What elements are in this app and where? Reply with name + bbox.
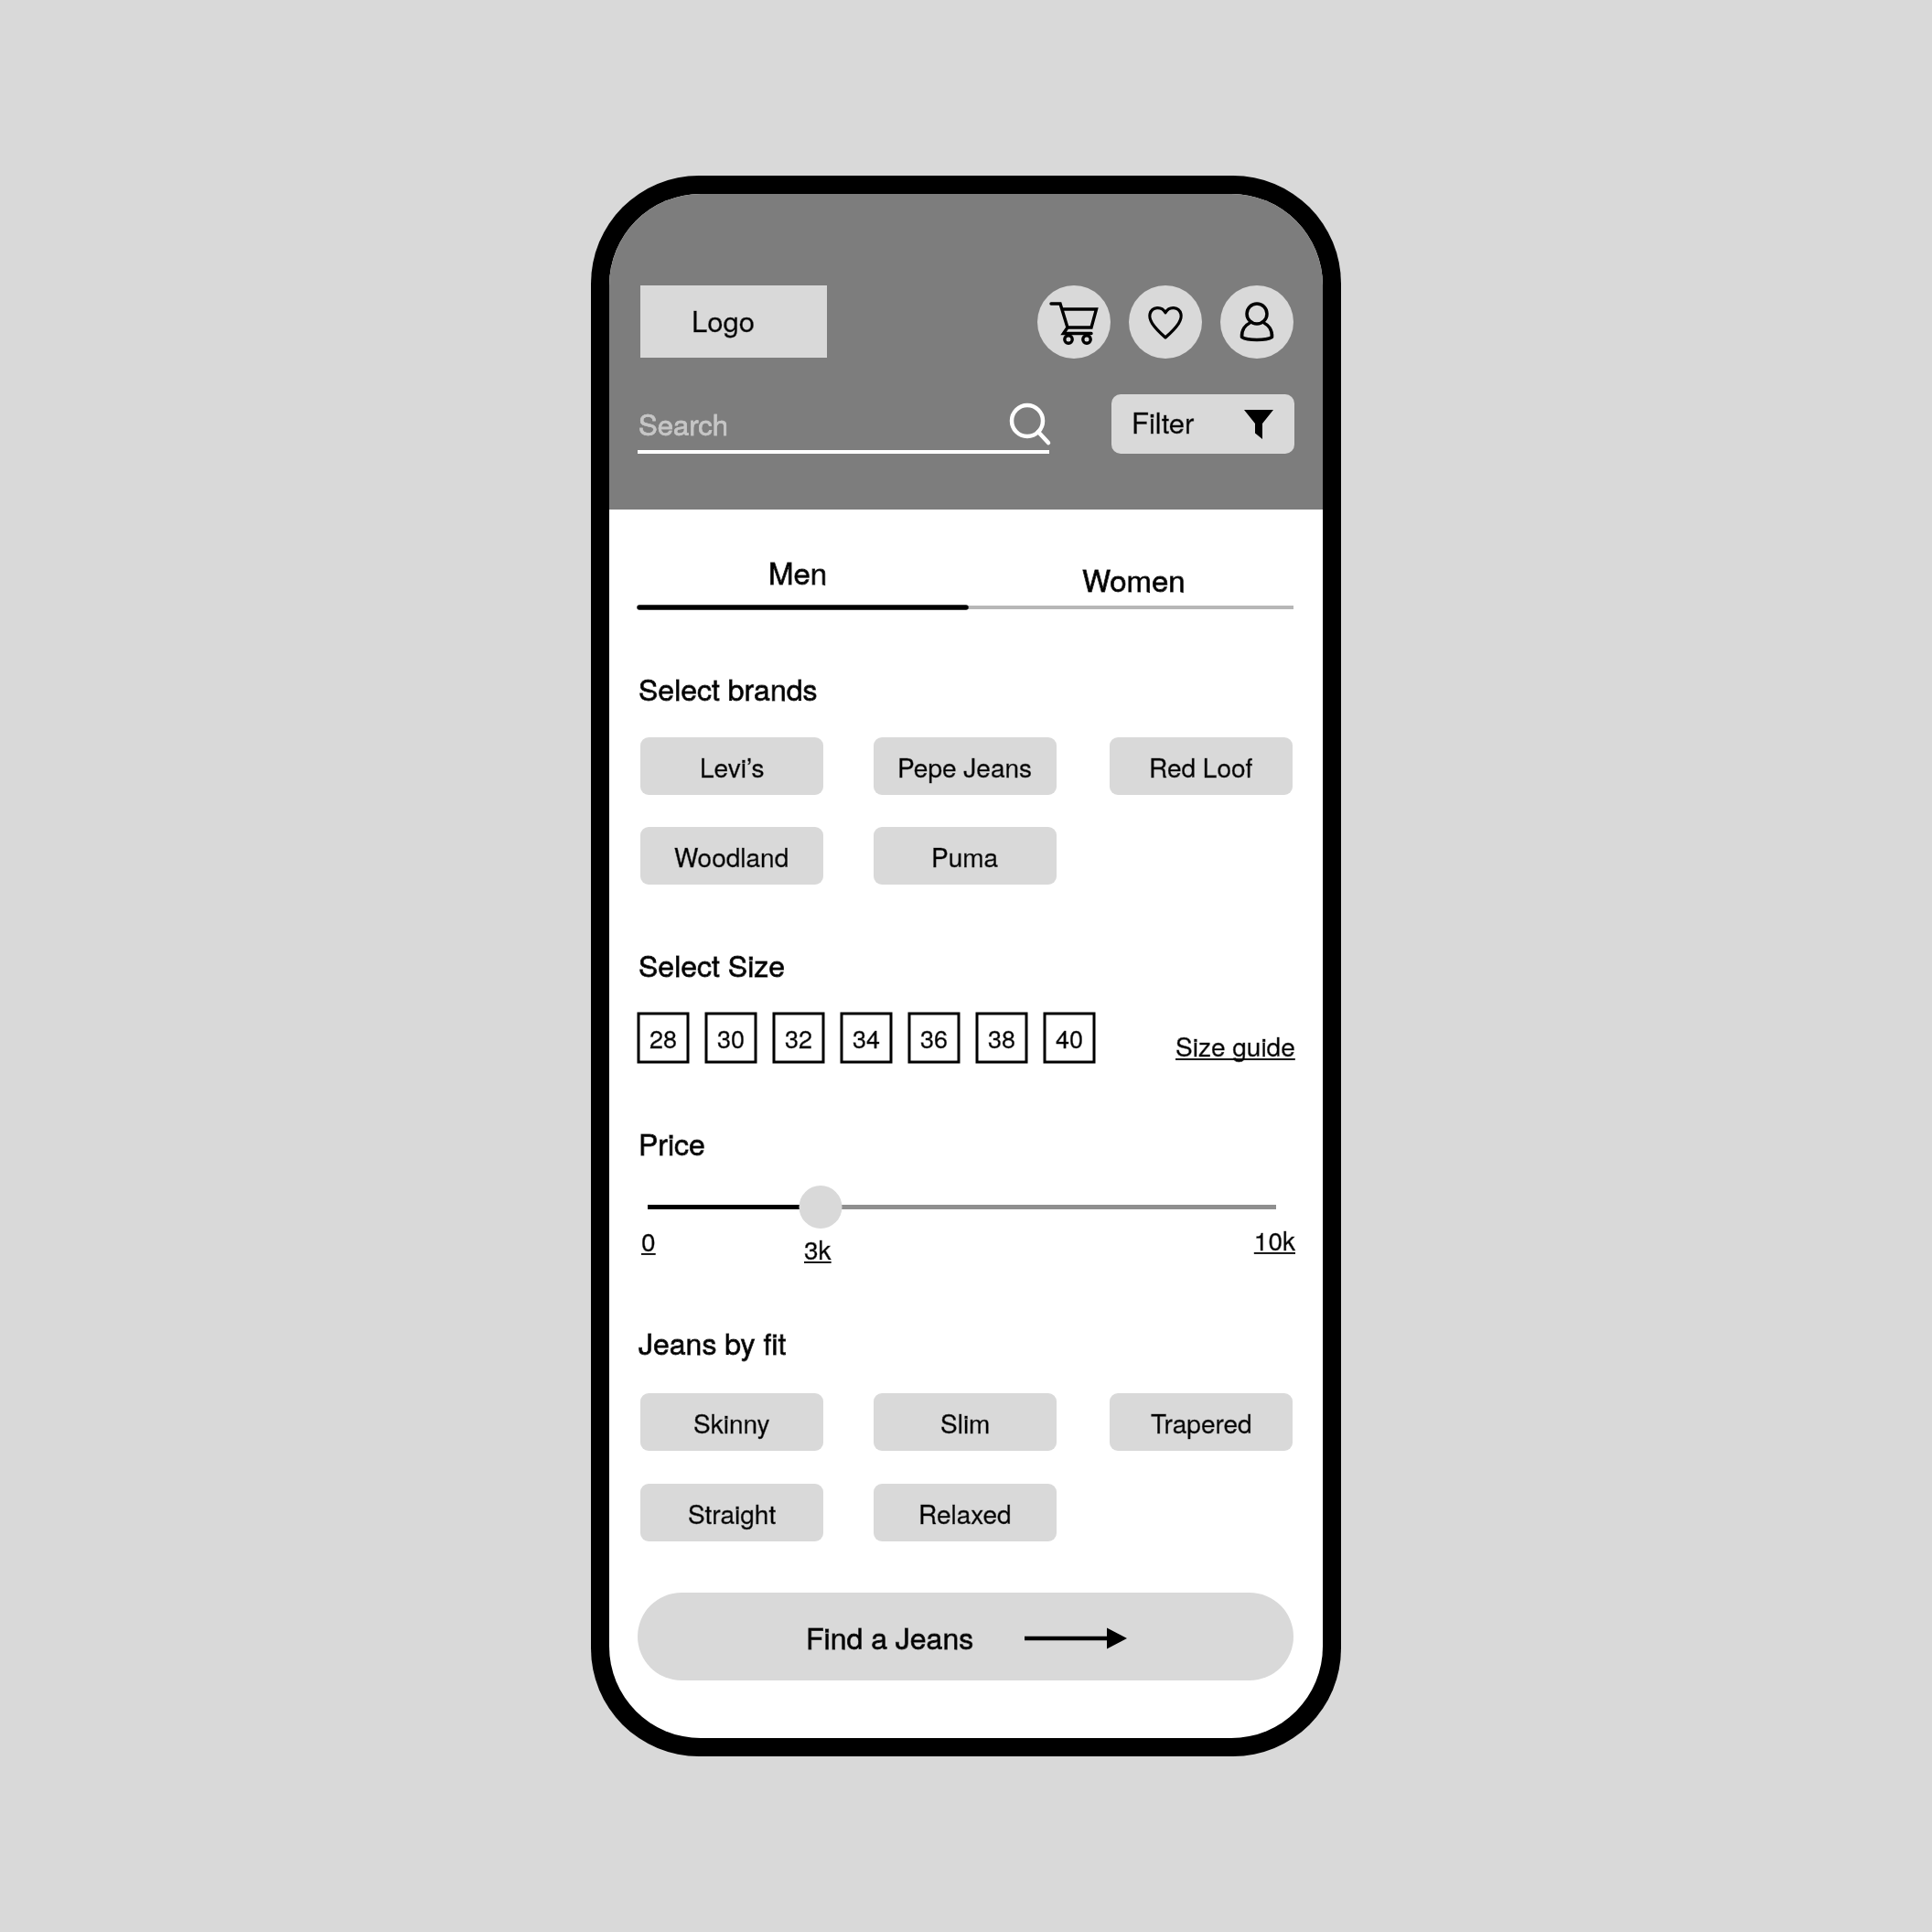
button[interactable]: Logo	[640, 285, 827, 358]
staticText: Pepe Jeans	[897, 748, 1033, 785]
staticText: Women	[1082, 557, 1186, 600]
staticText: 38	[988, 1020, 1016, 1056]
staticText: 30	[717, 1020, 746, 1056]
button[interactable]: Puma	[874, 827, 1057, 885]
staticText: Skinny	[693, 1404, 770, 1441]
staticText: Woodland	[674, 838, 789, 875]
staticText: Puma	[931, 838, 999, 875]
button[interactable]: Filter	[1111, 394, 1294, 454]
staticText: Price	[639, 1122, 705, 1164]
staticText: Men	[768, 550, 828, 593]
button[interactable]: Women	[965, 543, 1293, 607]
button[interactable]: Size guide	[1175, 1027, 1296, 1068]
button[interactable]: 30	[706, 1014, 756, 1062]
staticText: 40	[1056, 1020, 1084, 1056]
staticText: Skinny	[693, 1404, 770, 1441]
staticText: Slim	[940, 1404, 991, 1441]
button[interactable]: Pepe Jeans	[874, 737, 1057, 795]
staticText: Search	[639, 402, 729, 443]
staticText: Filter	[1132, 401, 1195, 441]
staticText: Search	[639, 402, 729, 443]
staticText: Select Size	[639, 943, 786, 985]
staticText: Jeans by fit	[639, 1321, 787, 1363]
staticText: 32	[785, 1020, 813, 1056]
button[interactable]: Relaxed	[874, 1484, 1057, 1541]
staticText: Logo	[692, 299, 755, 339]
staticText: 3k	[804, 1230, 832, 1267]
button[interactable]: Favourites	[1129, 285, 1202, 359]
button[interactable]: Find a Jeans	[638, 1593, 1293, 1680]
staticText: Slim	[940, 1404, 991, 1441]
staticText: Price	[639, 1122, 705, 1164]
staticText: 28	[649, 1020, 678, 1056]
staticText: 30	[717, 1020, 746, 1056]
staticText: 34	[853, 1020, 881, 1056]
staticText: 32	[785, 1020, 813, 1056]
staticText: Relaxed	[918, 1495, 1012, 1531]
staticText: 38	[988, 1020, 1016, 1056]
staticText: 34	[853, 1020, 881, 1056]
staticText: Puma	[931, 838, 999, 875]
staticText: Red Loof	[1149, 748, 1253, 785]
staticText: Size guide	[1175, 1027, 1295, 1064]
staticText: 10k	[1213, 1221, 1295, 1258]
staticText: Relaxed	[918, 1495, 1012, 1531]
staticText: Filter	[1132, 401, 1195, 441]
staticText: 36	[920, 1020, 949, 1056]
staticText: 10k	[1213, 1221, 1295, 1258]
staticText: 0	[641, 1222, 656, 1259]
button[interactable]: 40	[1045, 1014, 1094, 1062]
staticText: Straight	[688, 1495, 777, 1531]
staticText: Size guide	[1175, 1027, 1295, 1064]
button[interactable]: 34	[842, 1014, 891, 1062]
staticText: 28	[649, 1020, 678, 1056]
button[interactable]: 28	[639, 1014, 688, 1062]
button[interactable]: 38	[977, 1014, 1026, 1062]
staticText: Find a Jeans	[806, 1615, 974, 1658]
staticText: Men	[768, 550, 828, 593]
staticText: 36	[920, 1020, 949, 1056]
button[interactable]: Trapered	[1110, 1393, 1293, 1451]
button[interactable]: Slim	[874, 1393, 1057, 1451]
button[interactable]: Skinny	[640, 1393, 823, 1451]
staticText: Select brands	[639, 667, 818, 709]
button[interactable]: Search	[638, 393, 1049, 456]
button[interactable]: 32	[774, 1014, 823, 1062]
button[interactable]: Woodland	[640, 827, 823, 885]
button[interactable]: 36	[909, 1014, 959, 1062]
button[interactable]: Red Loof	[1110, 737, 1293, 795]
staticText: Levi’s	[700, 748, 765, 785]
staticText: Pepe Jeans	[897, 748, 1033, 785]
staticText: Red Loof	[1149, 748, 1253, 785]
staticText: Woodland	[674, 838, 789, 875]
staticText: Straight	[688, 1495, 777, 1531]
button[interactable]: Profile	[1220, 285, 1293, 359]
staticText: Jeans by fit	[639, 1321, 787, 1363]
staticText: Find a Jeans	[806, 1615, 974, 1658]
staticText: 0	[641, 1222, 656, 1259]
staticText: Logo	[692, 299, 755, 339]
staticText: 3k	[804, 1230, 832, 1267]
staticText: Select Size	[639, 943, 786, 985]
button[interactable]: Levi’s	[640, 737, 823, 795]
button[interactable]: Men	[639, 536, 965, 600]
staticText: Trapered	[1151, 1404, 1252, 1441]
staticText: Women	[1082, 557, 1186, 600]
staticText: Select brands	[639, 667, 818, 709]
button[interactable]: Straight	[640, 1484, 823, 1541]
staticText: 40	[1056, 1020, 1084, 1056]
button[interactable]: Shopping cart	[1037, 285, 1111, 359]
staticText: Trapered	[1151, 1404, 1252, 1441]
staticText: Levi’s	[700, 748, 765, 785]
